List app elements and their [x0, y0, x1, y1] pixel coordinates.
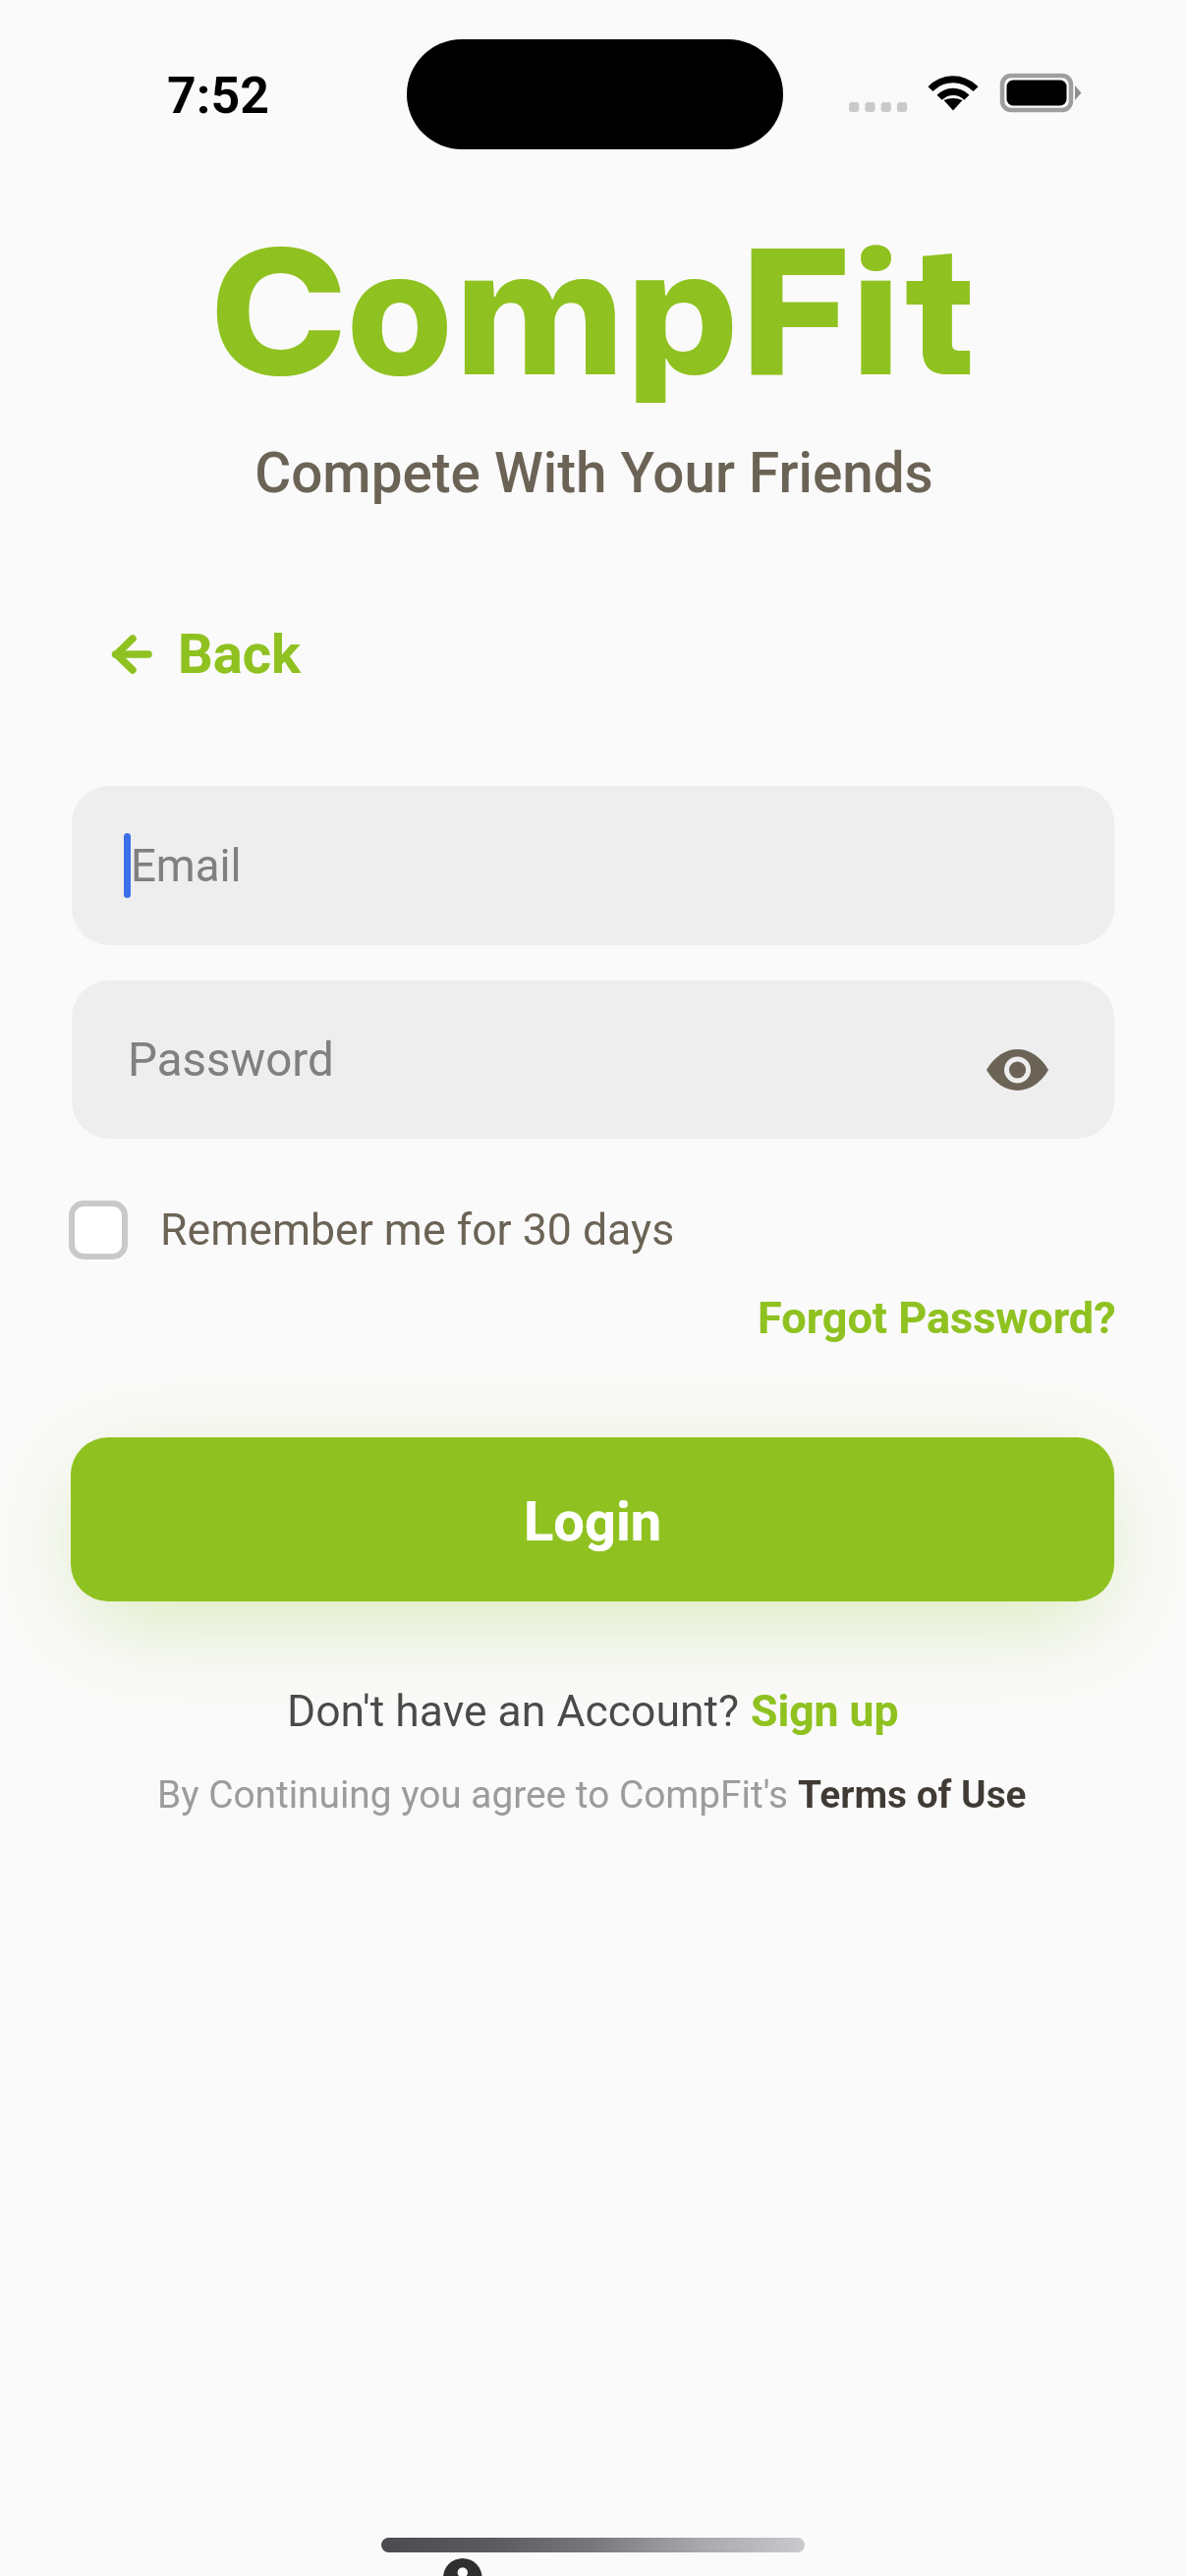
staticText: By Continuing you agree to CompFit's	[157, 1772, 798, 1817]
staticText: 7:52	[167, 66, 270, 126]
staticText: CompFit	[211, 186, 979, 429]
button[interactable]: Terms of Use	[798, 1772, 1027, 1817]
staticText: Don't have an Account?	[287, 1686, 751, 1737]
staticText: Compete With Your Friends	[254, 440, 933, 505]
button[interactable]: Login	[71, 1437, 1114, 1601]
button[interactable]: Email	[72, 786, 1114, 945]
staticText: Login	[524, 1489, 662, 1554]
button[interactable]: Sign up	[751, 1686, 899, 1737]
button[interactable]: Forgot Password?	[750, 1282, 1124, 1354]
staticText: Email	[131, 840, 242, 892]
button[interactable]: Show password	[973, 1026, 1061, 1114]
staticText: Back	[178, 622, 301, 687]
button[interactable]: Back	[96, 608, 316, 700]
button[interactable]: Password	[72, 980, 1114, 1139]
staticText: Remember me for 30 days	[160, 1204, 675, 1256]
staticText: Password	[128, 1033, 334, 1088]
button[interactable]: Remember me for 30 days	[49, 1181, 699, 1279]
